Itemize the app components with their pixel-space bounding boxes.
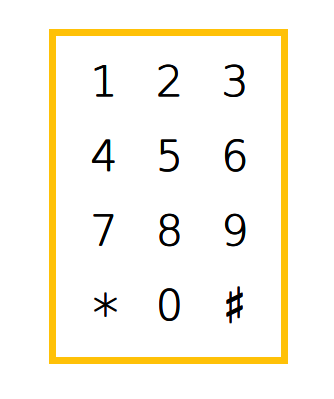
staticText: 1	[91, 56, 118, 106]
staticText: 8	[155, 206, 182, 256]
staticText: 9	[222, 206, 249, 255]
staticText: 7	[90, 206, 117, 255]
staticText: 8	[156, 206, 183, 255]
staticText: 2	[155, 57, 182, 107]
staticText: 6	[222, 131, 249, 181]
staticText: 2	[155, 56, 182, 106]
staticText: ∗	[89, 273, 122, 333]
button[interactable]: 6	[203, 120, 265, 192]
staticText: 9	[222, 206, 249, 256]
staticText: 3	[221, 57, 248, 107]
staticText: 3	[222, 56, 249, 106]
staticText: 2	[156, 56, 183, 106]
staticText: 4	[91, 131, 118, 181]
staticText: 5	[156, 132, 183, 181]
button[interactable]: 5	[138, 120, 200, 192]
button[interactable]: 4	[72, 120, 134, 192]
staticText: 3	[221, 56, 248, 106]
button[interactable]: 1	[72, 45, 134, 117]
staticText: 8	[156, 206, 183, 256]
staticText: 1	[91, 57, 118, 107]
staticText: 0	[156, 281, 183, 330]
staticText: 7	[90, 206, 117, 256]
staticText: 5	[155, 132, 182, 181]
staticText: 8	[155, 206, 182, 255]
button[interactable]: 0	[138, 269, 200, 341]
staticText: 6	[221, 132, 248, 181]
staticText: 4	[90, 132, 117, 181]
staticText: 9	[221, 206, 248, 255]
staticText: 2	[156, 57, 183, 107]
staticText: ♯	[222, 277, 246, 335]
staticText: ♯	[222, 277, 246, 334]
staticText: 1	[90, 57, 117, 107]
button[interactable]: 8	[138, 194, 200, 266]
staticText: 0	[156, 280, 183, 330]
staticText: 3	[222, 57, 249, 107]
staticText: ♯	[223, 277, 247, 334]
staticText: 7	[91, 206, 118, 255]
button[interactable]: 9	[203, 194, 265, 266]
staticText: 4	[91, 132, 118, 181]
button[interactable]: Pound	[203, 269, 265, 341]
staticText: 1	[90, 56, 117, 106]
button[interactable]: 2	[138, 45, 200, 117]
staticText: ∗	[89, 272, 122, 333]
staticText: ♯	[223, 277, 247, 335]
staticText: 6	[221, 131, 248, 181]
staticText: 4	[90, 131, 117, 181]
staticText: 9	[221, 206, 248, 256]
button[interactable]: 7	[72, 194, 134, 266]
staticText: ∗	[89, 273, 122, 333]
staticText: 5	[156, 131, 183, 181]
staticText: ∗	[89, 272, 122, 333]
staticText: 0	[155, 281, 182, 330]
staticText: 7	[91, 206, 118, 256]
button[interactable]: Star	[72, 269, 134, 341]
staticText: 5	[155, 131, 182, 181]
staticText: 6	[222, 132, 249, 181]
staticText: 0	[155, 280, 182, 330]
button[interactable]: 3	[203, 45, 265, 117]
